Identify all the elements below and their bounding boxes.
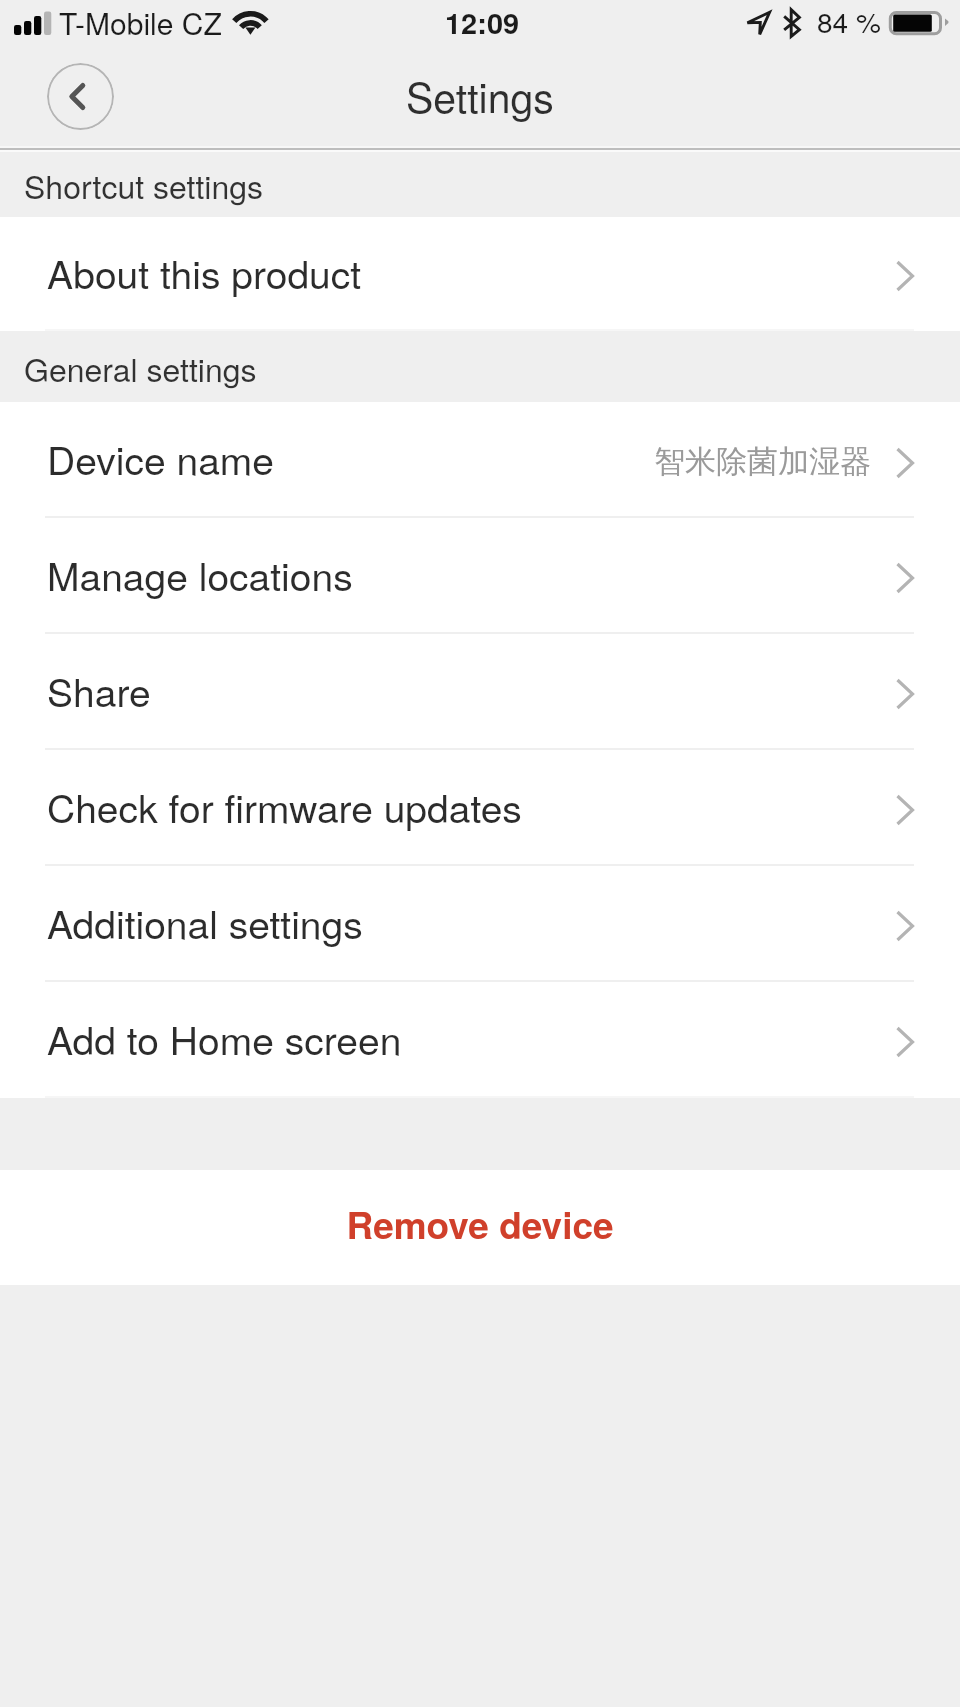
staticText: Shortcut settings: [24, 162, 263, 208]
button[interactable]: Remove device: [0, 1170, 960, 1285]
staticText: About this product: [47, 244, 362, 300]
button[interactable]: Add to Home screen: [0, 982, 960, 1098]
staticText: Manage locations: [47, 546, 353, 602]
staticText: 12:09: [445, 1, 520, 43]
staticText: Device name: [47, 430, 274, 486]
button[interactable]: Back: [47, 63, 114, 130]
staticText: Check for firmware updates: [47, 778, 522, 834]
button[interactable]: Device name: [0, 402, 960, 518]
staticText: Remove device: [346, 1197, 614, 1250]
button[interactable]: Additional settings: [0, 866, 960, 982]
staticText: Add to Home screen: [47, 1010, 402, 1066]
button[interactable]: About this product: [0, 217, 960, 331]
staticText: Share: [47, 662, 151, 718]
button[interactable]: Share: [0, 634, 960, 750]
button[interactable]: Check for firmware updates: [0, 750, 960, 866]
staticText: T-Mobile CZ: [59, 1, 222, 44]
staticText: Settings: [406, 66, 554, 125]
button[interactable]: Manage locations: [0, 518, 960, 634]
staticText: General settings: [24, 345, 257, 391]
staticText: 智米除菌加湿器: [654, 442, 871, 481]
staticText: 84 %: [817, 1, 881, 41]
staticText: Additional settings: [47, 894, 363, 950]
